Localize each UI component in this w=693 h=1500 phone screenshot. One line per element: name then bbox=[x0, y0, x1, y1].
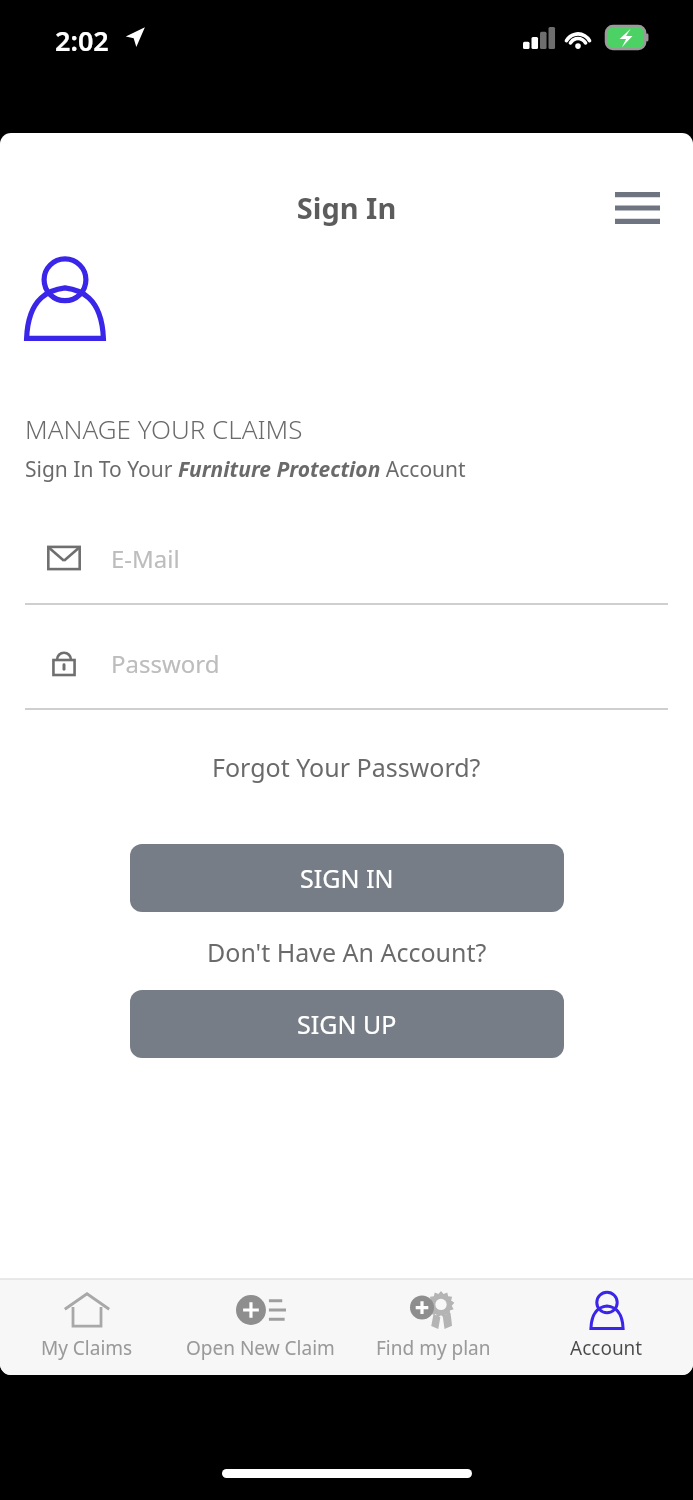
staticText: My Claims bbox=[41, 1335, 133, 1361]
button[interactable]: Don't Have An Account? bbox=[0, 928, 693, 976]
staticText: Sign In To Your Furniture Protection Acc… bbox=[25, 455, 466, 484]
staticText: Forgot Your Password? bbox=[212, 750, 481, 784]
button[interactable]: My Claims bbox=[0, 1279, 174, 1375]
staticText: Password bbox=[111, 647, 220, 680]
button[interactable]: Forgot Your Password? bbox=[0, 743, 693, 791]
staticText: Sign In bbox=[0, 188, 693, 227]
button[interactable]: Find my plan bbox=[347, 1279, 520, 1375]
staticText: SIGN UP bbox=[297, 1007, 397, 1041]
button[interactable]: E-Mail bbox=[25, 523, 668, 605]
button[interactable]: Menu bbox=[602, 173, 672, 243]
staticText: Account bbox=[570, 1335, 643, 1361]
button[interactable]: SIGN IN bbox=[130, 844, 564, 912]
button[interactable]: Account bbox=[520, 1279, 693, 1375]
button[interactable]: Password bbox=[25, 628, 668, 710]
button[interactable]: SIGN UP bbox=[130, 990, 564, 1058]
staticText: 2:02 bbox=[55, 22, 109, 59]
staticText: Don't Have An Account? bbox=[207, 935, 487, 969]
staticText: Find my plan bbox=[376, 1335, 491, 1361]
staticText: E-Mail bbox=[111, 542, 180, 575]
staticText: Open New Claim bbox=[186, 1335, 335, 1361]
staticText: SIGN IN bbox=[300, 861, 394, 895]
staticText: MANAGE YOUR CLAIMS bbox=[25, 411, 303, 446]
button[interactable]: Open New Claim bbox=[174, 1279, 347, 1375]
